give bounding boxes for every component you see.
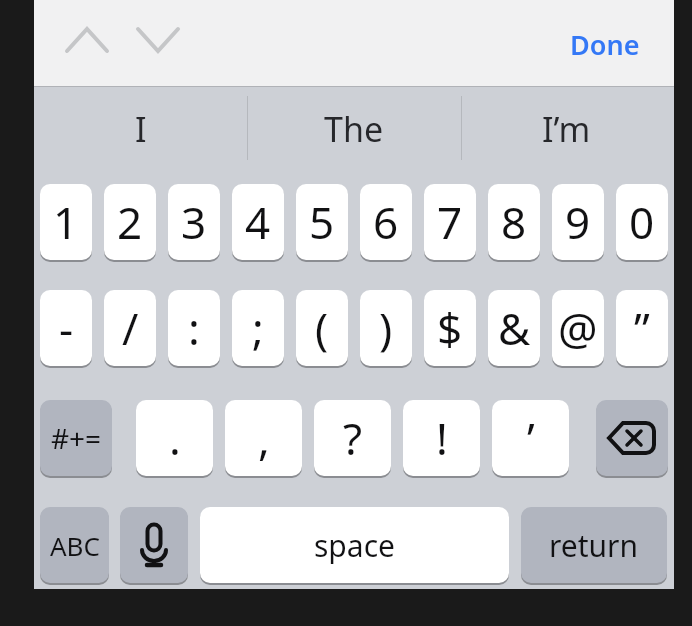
staticText: 9 (565, 192, 591, 252)
button[interactable]: ? (314, 400, 391, 476)
staticText: space (314, 525, 395, 566)
button[interactable]: : (168, 290, 220, 366)
button[interactable] (57, 18, 117, 62)
staticText: 7 (437, 192, 463, 252)
button[interactable] (128, 18, 188, 62)
button[interactable]: return (521, 507, 667, 583)
button[interactable]: - (40, 290, 92, 366)
staticText: 3 (181, 192, 207, 252)
staticText: return (549, 525, 639, 566)
button[interactable]: ’ (492, 400, 569, 476)
staticText: ABC (50, 528, 100, 563)
staticText: 8 (501, 192, 527, 252)
button[interactable]: I’m (460, 88, 673, 170)
button[interactable]: I (34, 88, 247, 170)
staticText: ? (343, 408, 363, 468)
staticText: ” (634, 298, 650, 358)
staticText: : (188, 298, 200, 358)
button[interactable]: ABC (40, 507, 109, 583)
staticText: . (169, 408, 181, 468)
staticText: ; (252, 298, 264, 358)
button[interactable]: & (488, 290, 540, 366)
staticText: ! (436, 408, 448, 468)
button[interactable]: 8 (488, 184, 540, 260)
button[interactable]: The (247, 88, 460, 170)
staticText: ( (315, 298, 329, 358)
staticText: 6 (373, 192, 399, 252)
staticText: ) (379, 298, 393, 358)
staticText: 2 (117, 192, 143, 252)
staticText: Done (570, 26, 640, 63)
staticText: , (258, 408, 270, 468)
staticText: ’ (527, 408, 535, 468)
staticText: - (59, 298, 74, 358)
button[interactable]: , (225, 400, 302, 476)
staticText: #+= (51, 419, 102, 457)
button[interactable]: @ (552, 290, 604, 366)
staticText: $ (437, 298, 463, 358)
button[interactable]: 0 (616, 184, 668, 260)
button[interactable]: 9 (552, 184, 604, 260)
button[interactable]: 7 (424, 184, 476, 260)
staticText: The (324, 106, 384, 152)
button[interactable]: ) (360, 290, 412, 366)
button[interactable]: 6 (360, 184, 412, 260)
button[interactable]: . (136, 400, 213, 476)
button[interactable]: Done (540, 20, 640, 68)
staticText: 1 (53, 192, 79, 252)
button[interactable]: 1 (40, 184, 92, 260)
button[interactable] (120, 507, 188, 583)
button[interactable]: space (200, 507, 509, 583)
button[interactable] (596, 400, 668, 476)
button[interactable]: ! (403, 400, 480, 476)
staticText: 5 (309, 192, 335, 252)
button[interactable]: 2 (104, 184, 156, 260)
button[interactable]: ” (616, 290, 668, 366)
button[interactable]: #+= (40, 400, 112, 476)
button[interactable]: 4 (232, 184, 284, 260)
button[interactable]: ; (232, 290, 284, 366)
staticText: & (498, 298, 531, 358)
staticText: 4 (245, 192, 271, 252)
button[interactable]: 3 (168, 184, 220, 260)
button[interactable]: ( (296, 290, 348, 366)
staticText: @ (558, 298, 598, 358)
staticText: 0 (629, 192, 655, 252)
staticText: I’m (542, 106, 591, 152)
button[interactable]: 5 (296, 184, 348, 260)
staticText: I (135, 106, 147, 152)
button[interactable]: $ (424, 290, 476, 366)
button[interactable]: / (104, 290, 156, 366)
staticText: / (122, 298, 139, 358)
